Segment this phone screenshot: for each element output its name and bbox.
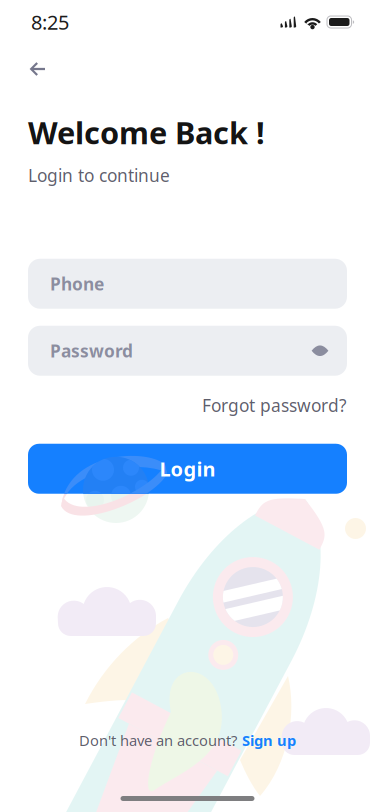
staticText: Password: [50, 339, 133, 362]
button[interactable]: Forgot password?: [202, 394, 347, 417]
button[interactable]: Sign up: [242, 730, 296, 750]
staticText: Phone: [50, 272, 104, 295]
staticText: Sign up: [242, 730, 296, 750]
staticText: Forgot password?: [202, 394, 347, 417]
staticText: 8:25: [31, 9, 69, 35]
staticText: Don't have an account?: [79, 730, 237, 750]
button[interactable]: Login: [28, 444, 347, 494]
staticText: Login to continue: [28, 164, 170, 187]
staticText: Welcome Back !: [28, 112, 265, 153]
staticText: Login: [159, 455, 215, 482]
button[interactable]: Back: [0, 44, 70, 90]
